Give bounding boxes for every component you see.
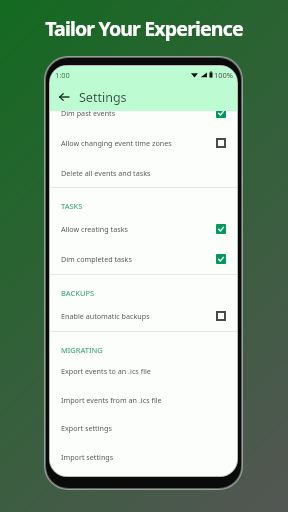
button[interactable]: Import events from an .ics file [50, 385, 237, 414]
button[interactable]: Enable automatic backups [50, 301, 237, 330]
staticText: Export settings [61, 423, 112, 433]
staticText: MIGRATING [61, 345, 103, 355]
button[interactable]: Allow changing event time zones [50, 128, 237, 157]
staticText: Import settings [61, 452, 114, 462]
staticText: Tailor Your Experience [0, 15, 288, 42]
staticText: Dim completed tasks [61, 254, 132, 264]
button[interactable]: Export events to an .ics file [50, 356, 237, 385]
button[interactable]: Dim past events [50, 111, 237, 127]
staticText: Export events to an .ics file [61, 366, 151, 376]
button[interactable]: Export settings [50, 413, 237, 442]
staticText: BACKUPS [61, 288, 95, 298]
staticText: Delete all events and tasks [61, 168, 151, 178]
staticText: TASKS [61, 201, 83, 211]
button[interactable]: Delete all events and tasks [50, 158, 237, 187]
staticText: 100% [214, 70, 234, 80]
staticText: Allow creating tasks [61, 224, 128, 234]
staticText: Enable automatic backups [61, 311, 150, 321]
button[interactable]: Back [54, 87, 74, 107]
staticText: Import events from an .ics file [61, 395, 162, 405]
staticText: Settings [79, 89, 127, 106]
staticText: 1:00 [55, 70, 70, 80]
staticText: Dim past events [61, 111, 116, 118]
button[interactable]: Import settings [50, 442, 237, 471]
button[interactable]: Dim completed tasks [50, 244, 237, 273]
button[interactable]: Allow creating tasks [50, 214, 237, 243]
staticText: Allow changing event time zones [61, 138, 172, 148]
